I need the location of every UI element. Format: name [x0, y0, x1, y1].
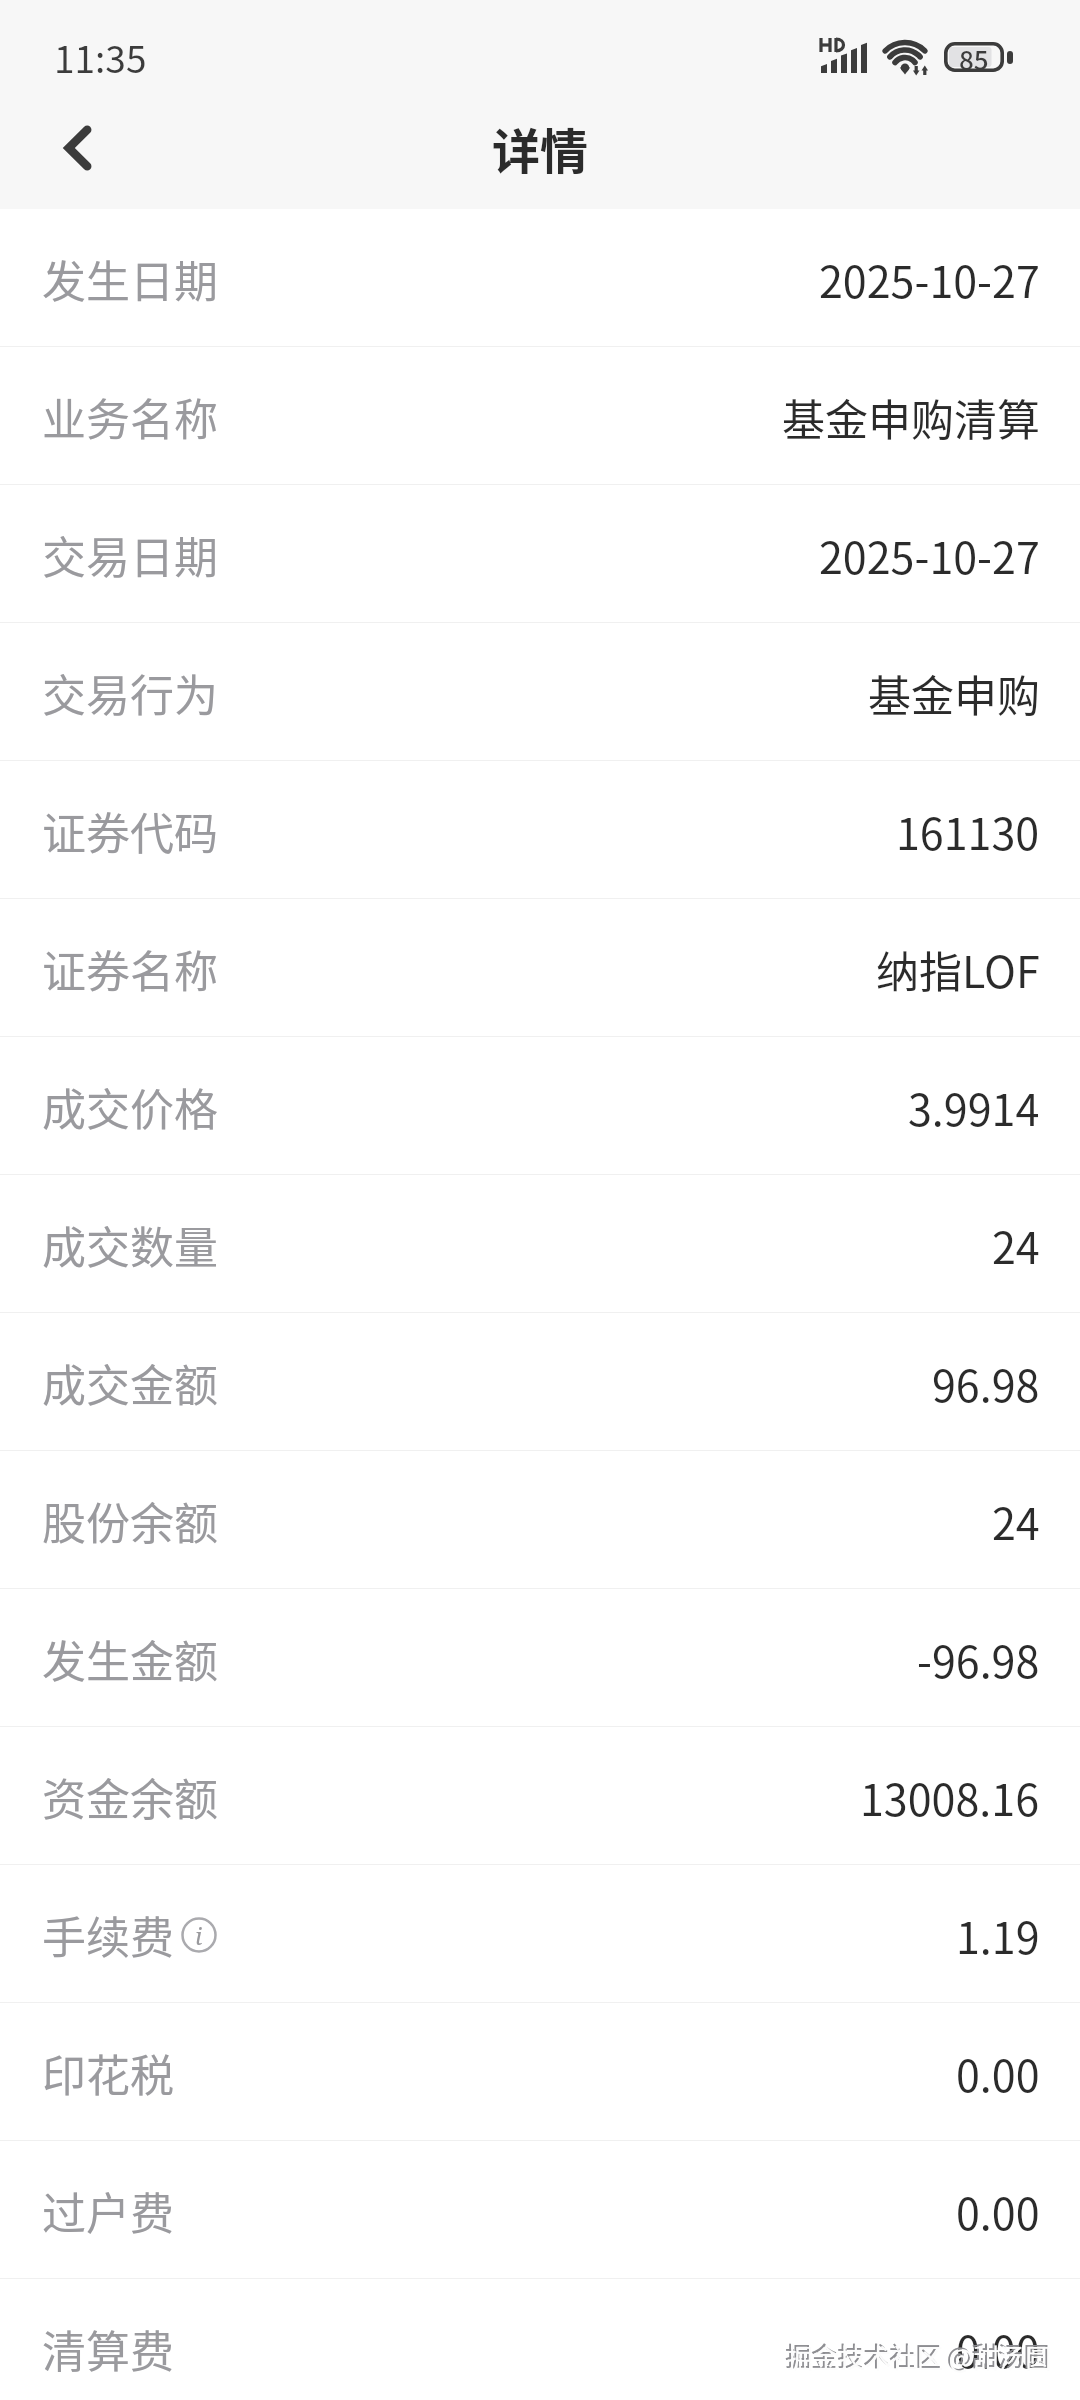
staticText: 24 [992, 1490, 1040, 1552]
staticText: -96.98 [917, 1628, 1040, 1690]
staticText: 0.00 [956, 2318, 1040, 2380]
staticText: 85 [959, 40, 989, 70]
staticText: 1.19 [956, 1904, 1040, 1966]
staticText: 0.00 [956, 2042, 1040, 2104]
staticText: 手续费 [42, 1903, 174, 1967]
staticText: 成交数量 [42, 1213, 218, 1277]
staticText: 业务名称 [42, 385, 218, 449]
staticText: 2025-10-27 [819, 248, 1040, 310]
button[interactable]: 发生金额 [0, 1589, 1080, 1727]
staticText: 161130 [896, 800, 1040, 862]
button[interactable]: 发生日期 [0, 209, 1080, 347]
button[interactable]: 业务名称 [0, 347, 1080, 485]
staticText: 详情 [492, 113, 589, 183]
staticText: 发生日期 [42, 247, 218, 311]
button[interactable]: 印花税 [0, 2003, 1080, 2141]
staticText: 股份余额 [42, 1489, 218, 1553]
staticText: 纳指LOF [876, 938, 1040, 1000]
staticText: 证券代码 [42, 799, 218, 863]
button[interactable]: 成交价格 [0, 1037, 1080, 1175]
staticText: 基金申购清算 [782, 386, 1040, 448]
staticText: 11:35 [54, 30, 147, 84]
button[interactable]: 证券代码 [0, 761, 1080, 899]
staticText: 96.98 [932, 1352, 1040, 1414]
button[interactable]: 过户费 [0, 2141, 1080, 2279]
staticText: 资金余额 [42, 1765, 218, 1829]
button[interactable]: Back [22, 95, 133, 200]
button[interactable]: 清算费 [0, 2279, 1080, 2400]
staticText: 13008.16 [860, 1766, 1040, 1828]
button[interactable]: 手续费 [0, 1865, 1080, 2003]
staticText: 过户费 [42, 2179, 174, 2243]
staticText: 发生金额 [42, 1627, 218, 1691]
staticText: 交易行为 [42, 661, 218, 725]
button[interactable]: 成交金额 [0, 1313, 1080, 1451]
staticText: 成交金额 [42, 1351, 218, 1415]
staticText: 24 [992, 1214, 1040, 1276]
staticText: 基金申购 [868, 662, 1040, 724]
button[interactable]: 交易行为 [0, 623, 1080, 761]
staticText: 印花税 [42, 2041, 174, 2105]
button[interactable]: 成交数量 [0, 1175, 1080, 1313]
button[interactable]: 资金余额 [0, 1727, 1080, 1865]
staticText: 0.00 [956, 2180, 1040, 2242]
button[interactable]: 交易日期 [0, 485, 1080, 623]
staticText: 清算费 [42, 2317, 174, 2381]
staticText: 掘金技术社区 @甜汤圆 [787, 2338, 1080, 2376]
button[interactable]: 证券名称 [0, 899, 1080, 1037]
button[interactable]: 股份余额 [0, 1451, 1080, 1589]
staticText: 交易日期 [42, 523, 218, 587]
staticText: 2025-10-27 [819, 524, 1040, 586]
staticText: 3.9914 [908, 1076, 1040, 1138]
staticText: 证券名称 [42, 937, 218, 1001]
button[interactable]: Fee information [181, 1917, 217, 1953]
staticText: 掘金技术社区 @甜汤圆 [785, 2336, 1080, 2374]
staticText: 成交价格 [42, 1075, 218, 1139]
staticText: i [195, 1919, 203, 1952]
